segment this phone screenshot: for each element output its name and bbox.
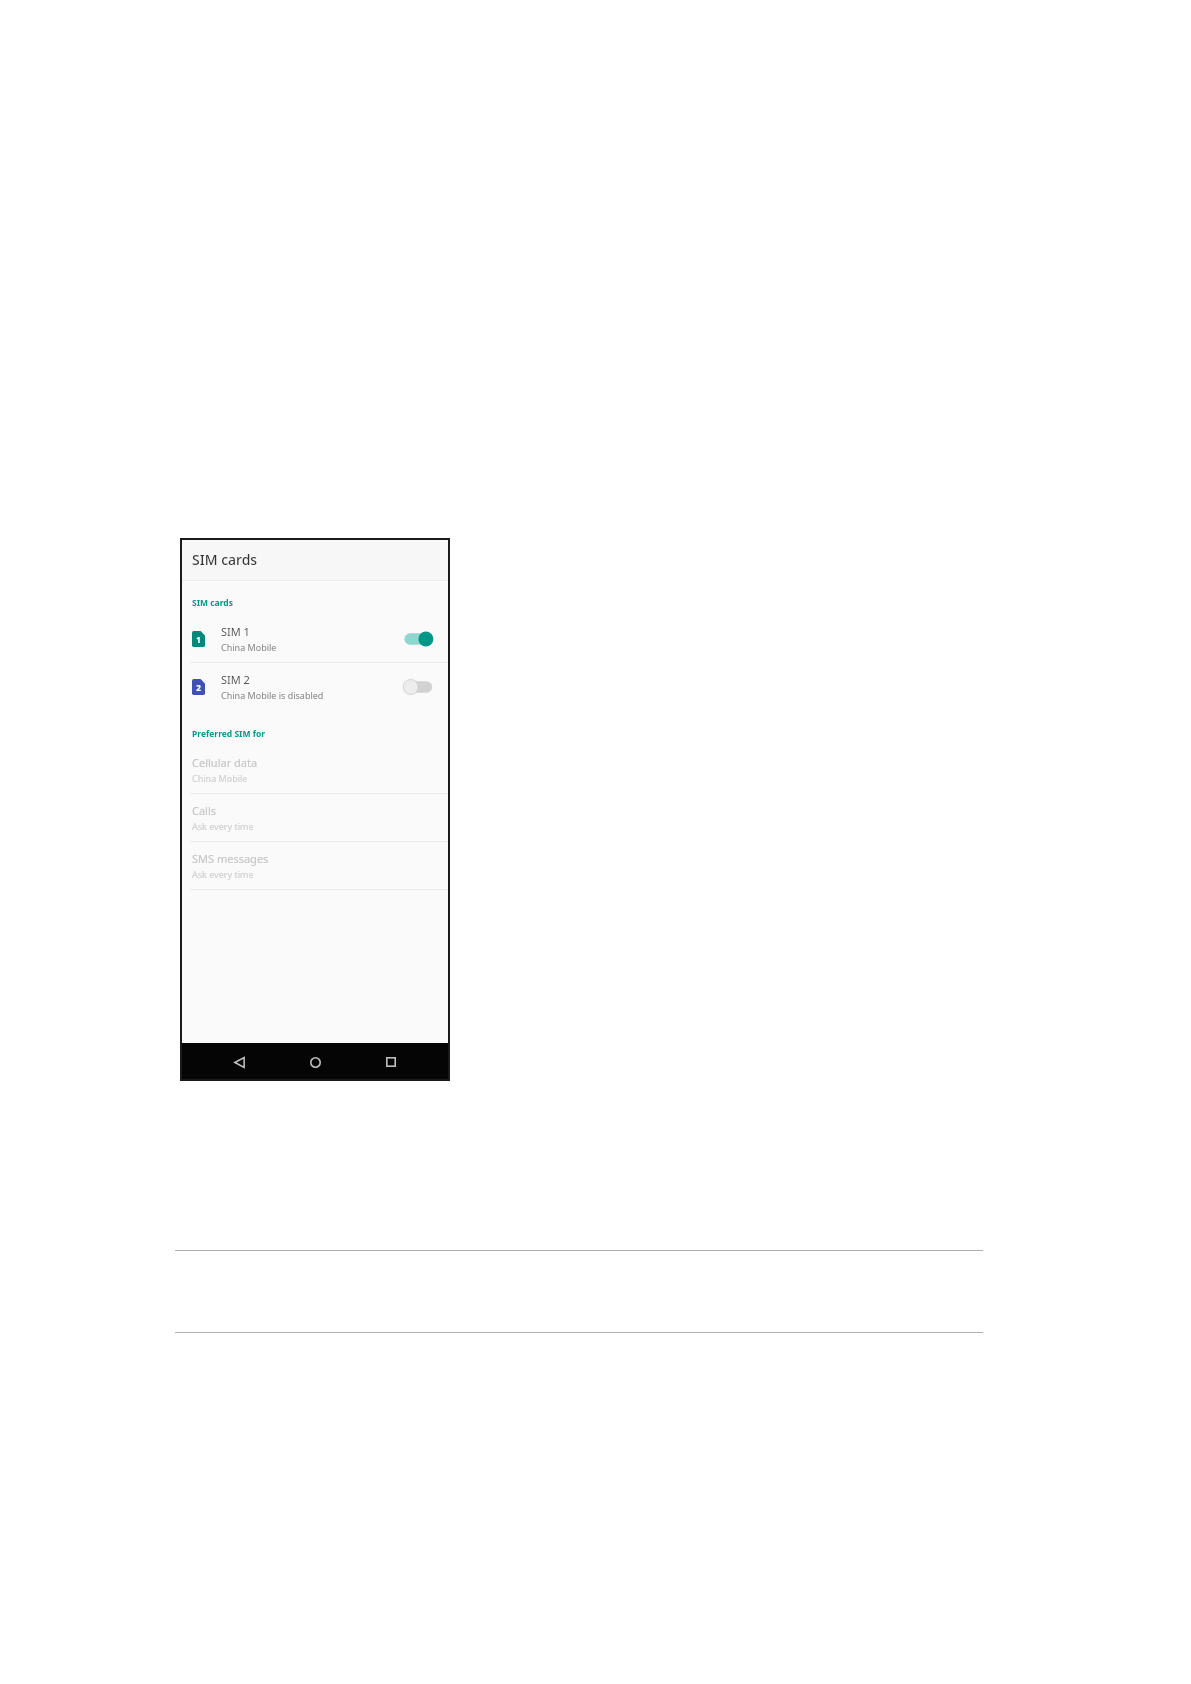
staticText: 2 bbox=[196, 682, 201, 693]
staticText: China Mobile bbox=[221, 641, 277, 653]
button[interactable]: Back bbox=[222, 1045, 256, 1079]
staticText: SIM 1 bbox=[221, 624, 250, 639]
staticText: China Mobile bbox=[192, 772, 248, 784]
button[interactable]: 2 bbox=[180, 663, 450, 710]
staticText: Preferred SIM for bbox=[192, 728, 266, 740]
button[interactable]: Recent apps bbox=[374, 1045, 408, 1079]
staticText: Calls bbox=[192, 803, 217, 818]
staticText: SIM 2 bbox=[221, 672, 250, 687]
button[interactable]: Home bbox=[298, 1045, 332, 1079]
staticText: 1 bbox=[196, 634, 201, 645]
staticText: Ask every time bbox=[192, 868, 254, 880]
button[interactable]: Toggle SIM 2 bbox=[402, 676, 436, 698]
button[interactable]: SMS messages bbox=[180, 842, 450, 889]
staticText: SIM cards bbox=[192, 597, 233, 609]
button[interactable]: 1 bbox=[180, 615, 450, 662]
staticText: SMS messages bbox=[192, 851, 269, 866]
staticText: China Mobile is disabled bbox=[221, 689, 324, 701]
staticText: Cellular data bbox=[192, 755, 258, 770]
staticText: Ask every time bbox=[192, 820, 254, 832]
button[interactable]: Cellular data bbox=[180, 746, 450, 793]
staticText: SIM cards bbox=[192, 550, 258, 569]
button[interactable]: Calls bbox=[180, 794, 450, 841]
button[interactable]: Toggle SIM 1 bbox=[402, 628, 436, 650]
